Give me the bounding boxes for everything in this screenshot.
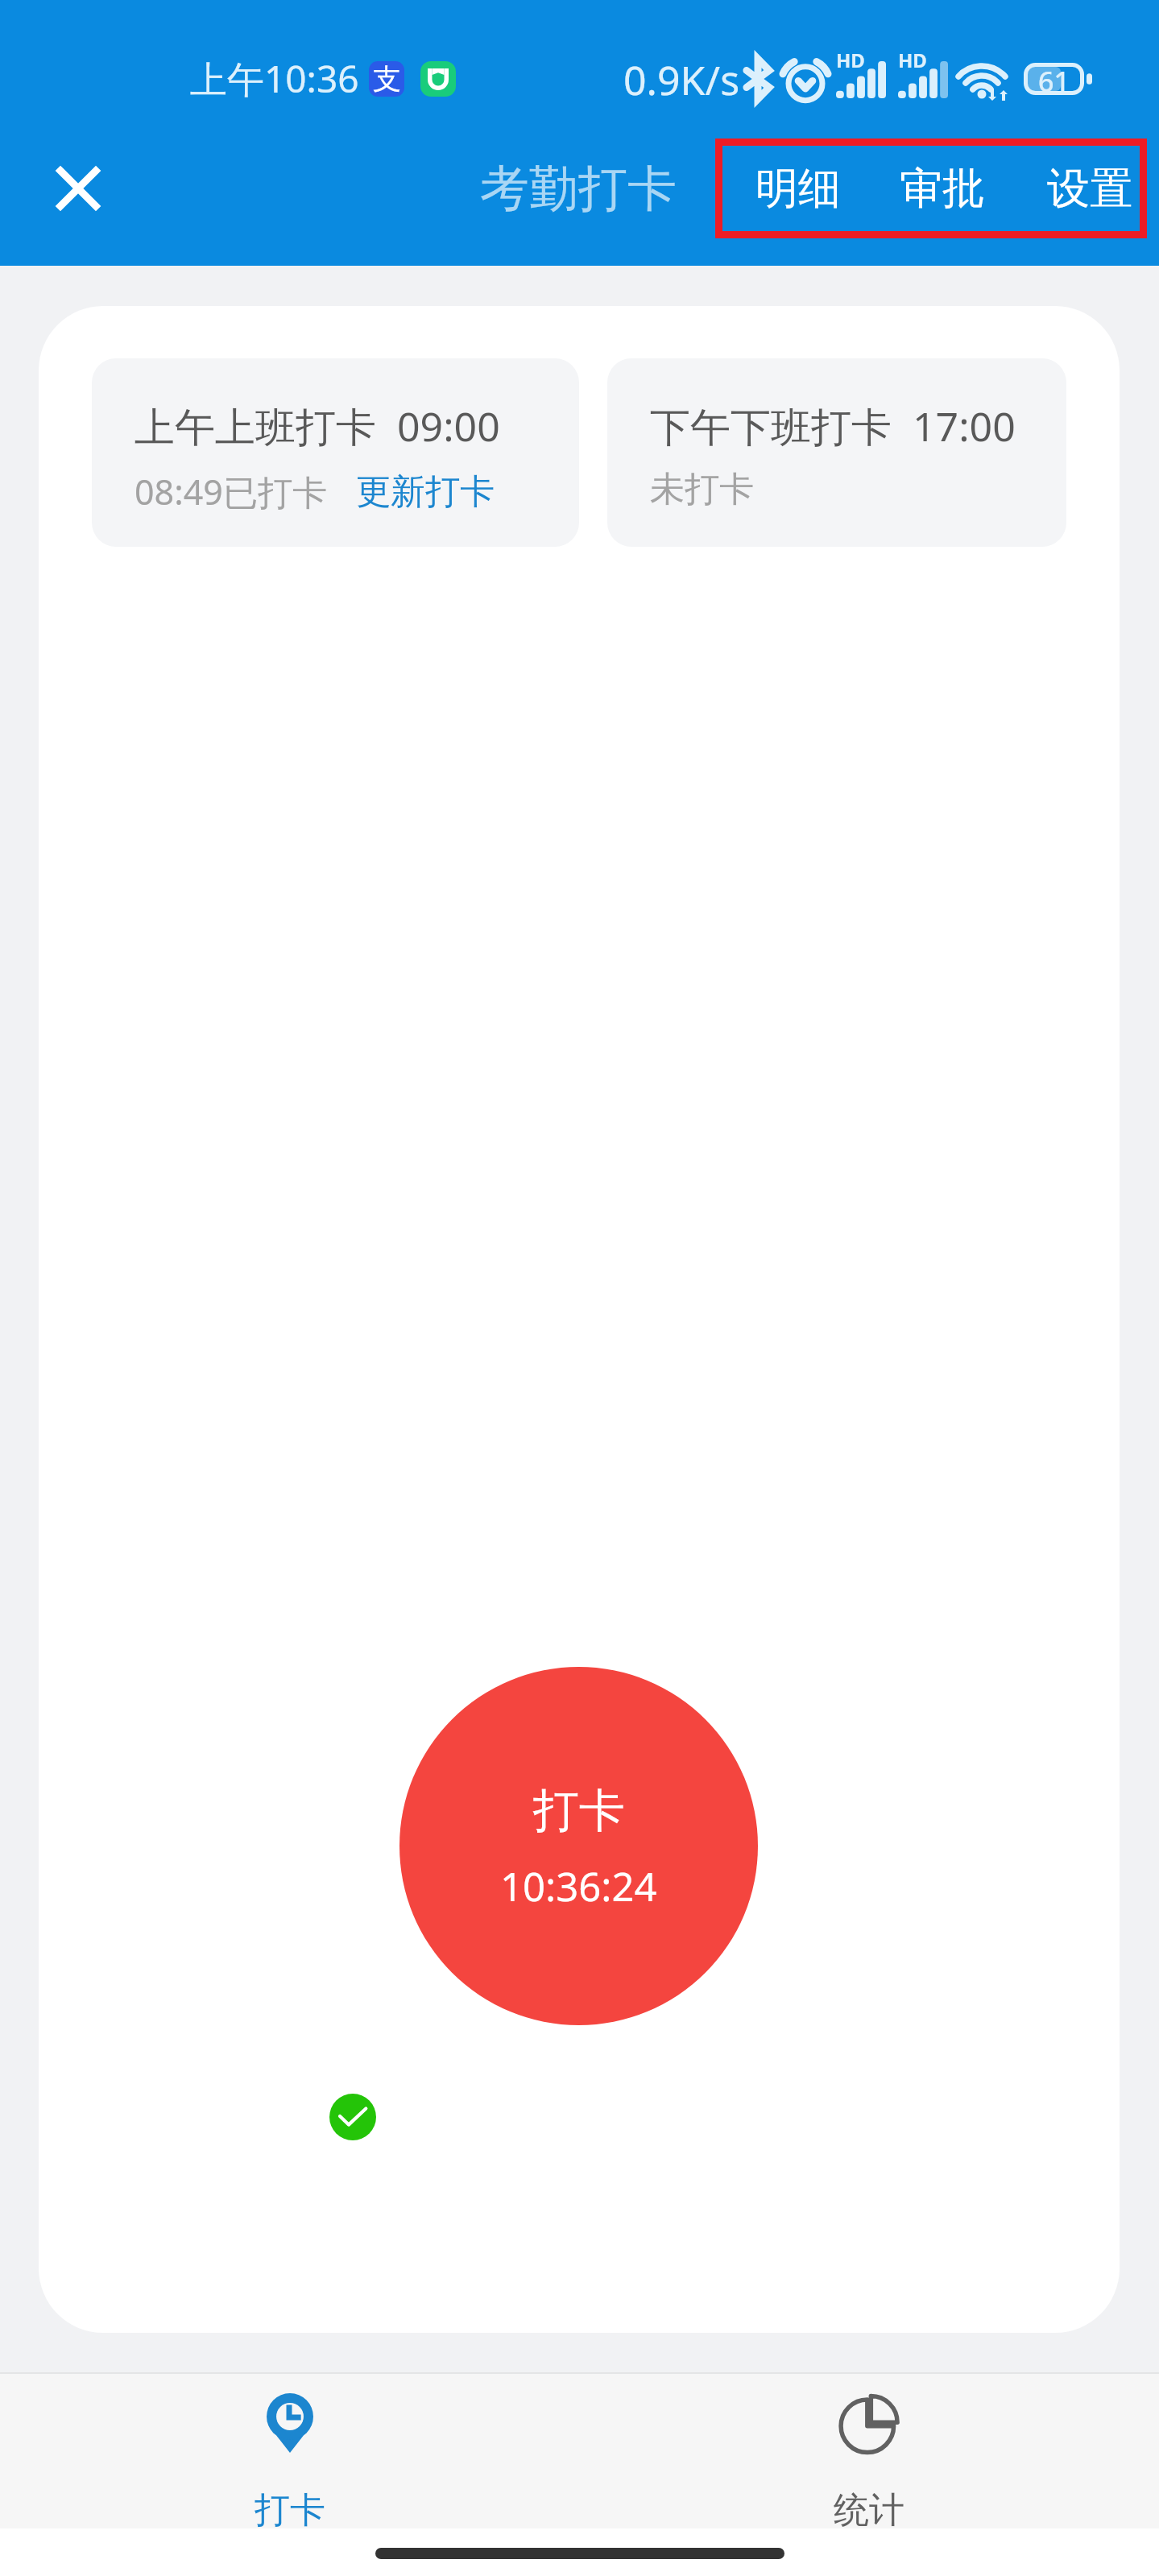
- staticText: HD: [898, 47, 927, 73]
- button[interactable]: Close: [38, 148, 118, 229]
- button[interactable]: 审批: [896, 154, 988, 224]
- button[interactable]: 打卡: [399, 1667, 758, 2025]
- button[interactable]: 下午下班打卡 17:00: [607, 358, 1066, 547]
- staticText: 考勤打卡: [480, 158, 677, 220]
- staticText: 上午10:36: [190, 53, 359, 104]
- staticText: 设置: [1047, 162, 1132, 216]
- button[interactable]: 上午上班打卡 09:00: [92, 358, 579, 547]
- staticText: 统计: [834, 2488, 904, 2533]
- button[interactable]: 打卡: [0, 2372, 579, 2528]
- staticText: 10:36:24: [500, 1859, 657, 1913]
- staticText: 更新打卡: [356, 470, 495, 514]
- staticText: 上午上班打卡 09:00: [135, 399, 500, 453]
- staticText: 明细: [755, 162, 841, 216]
- staticText: HD: [836, 47, 865, 73]
- staticText: 0.9K/s: [623, 52, 740, 107]
- button[interactable]: 统计: [579, 2372, 1159, 2528]
- staticText: 审批: [900, 162, 985, 216]
- button[interactable]: 设置: [1044, 154, 1136, 224]
- button[interactable]: 更新打卡: [356, 470, 495, 514]
- staticText: 08:49已打卡: [135, 468, 327, 515]
- staticText: 下午下班打卡 17:00: [650, 399, 1016, 453]
- staticText: 打卡: [255, 2488, 325, 2533]
- staticText: 未打卡: [650, 468, 754, 511]
- staticText: 打卡: [533, 1782, 625, 1840]
- button[interactable]: 明细: [752, 154, 844, 224]
- staticText: 支: [373, 61, 401, 97]
- staticText: 61: [1038, 63, 1070, 95]
